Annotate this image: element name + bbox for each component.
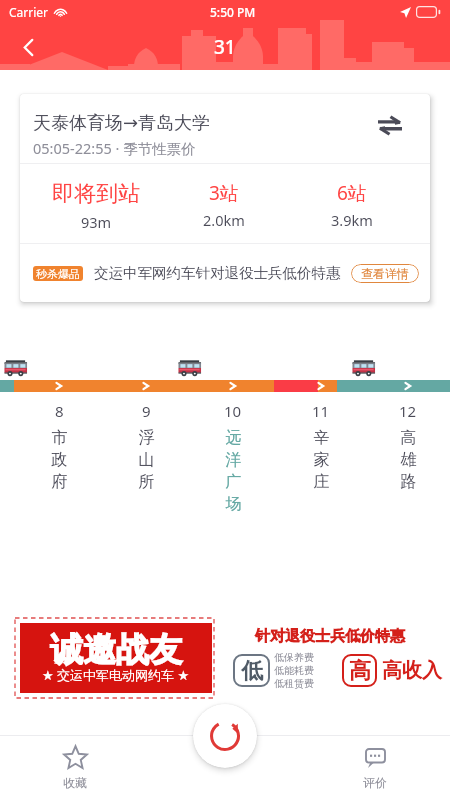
staticText: 查看详情 (361, 266, 409, 281)
button[interactable]: Back (8, 27, 48, 67)
staticText: Carrier (9, 4, 49, 20)
staticText: 05:05-22:55 · 季节性票价 (33, 138, 196, 158)
staticText: 31 (214, 34, 236, 60)
staticText: 2.0km (203, 210, 245, 230)
button[interactable]: 3站 (160, 180, 288, 230)
staticText: 11 (312, 401, 330, 421)
button[interactable]: 10 (213, 401, 253, 514)
button[interactable]: Swap direction (369, 104, 411, 146)
staticText: 交运中军网约车针对退役士兵低价特惠 (94, 264, 341, 282)
staticText: 低保养费 (274, 651, 314, 664)
staticText: 6站 (337, 180, 367, 206)
staticText: 浮山所 (138, 428, 155, 492)
staticText: 低租赁费 (274, 677, 314, 690)
staticText: 天泰体育场→青岛大学 (33, 112, 211, 135)
staticText: 3.9km (331, 210, 373, 230)
staticText: 8 (55, 401, 64, 421)
staticText: 针对退役士兵低价特惠 (255, 627, 405, 646)
button[interactable]: 11 (301, 401, 341, 492)
staticText: 12 (399, 401, 417, 421)
button[interactable]: 8 (39, 401, 79, 492)
button[interactable]: 收藏 (0, 735, 150, 800)
button[interactable]: 9 (126, 401, 166, 492)
staticText: 高雄路 (400, 428, 417, 492)
staticText: 高收入 (382, 658, 442, 683)
staticText: 即将到站 (52, 180, 140, 208)
staticText: 收藏 (63, 775, 87, 790)
staticText: 市政府 (51, 428, 68, 492)
staticText: 低能耗费 (274, 664, 314, 677)
button[interactable]: 评价 (300, 735, 450, 800)
staticText: 远洋广场 (225, 428, 242, 514)
button[interactable]: 诚邀战友 (0, 610, 450, 730)
staticText: 诚邀战友 (50, 629, 182, 671)
staticText: 93m (81, 212, 112, 232)
staticText: ★ 交运中军电动网约车 ★ (42, 666, 190, 684)
button[interactable]: Refresh (193, 704, 257, 768)
button[interactable]: 12 (388, 401, 428, 492)
staticText: 9 (142, 401, 151, 421)
staticText: 低 (241, 657, 263, 685)
button[interactable]: 即将到站 (32, 180, 160, 232)
staticText: 10 (224, 401, 242, 421)
staticText: 秒杀爆品 (36, 267, 80, 281)
button[interactable]: 查看详情 (351, 264, 419, 283)
button[interactable]: 6站 (288, 180, 416, 230)
staticText: 评价 (363, 775, 387, 790)
staticText: 高 (349, 657, 371, 685)
staticText: 3站 (209, 180, 239, 206)
staticText: 辛家庄 (313, 428, 330, 492)
staticText: 5:50 PM (210, 4, 256, 20)
